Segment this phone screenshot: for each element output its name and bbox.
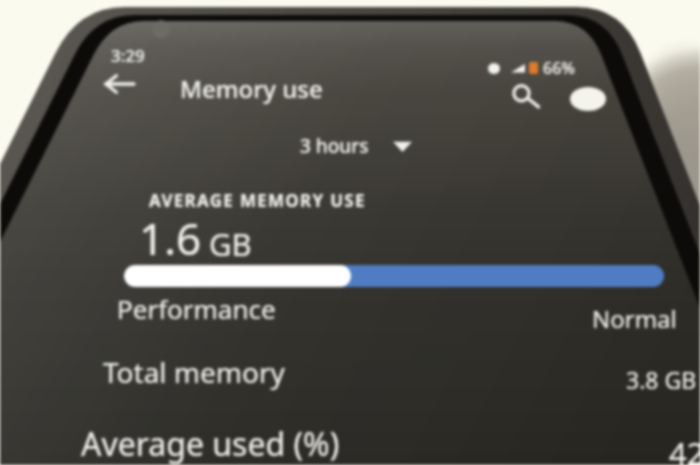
staticText: Average used (%)	[81, 422, 340, 465]
button[interactable]: Average used (%)	[81, 422, 700, 465]
button[interactable]: Search	[503, 74, 547, 118]
staticText: Total memory	[103, 353, 285, 391]
button[interactable]: Back	[97, 62, 141, 106]
button[interactable]: Account	[566, 77, 610, 121]
staticText: Memory use	[180, 72, 323, 105]
staticText: Performance	[117, 291, 276, 326]
staticText: 3 hours	[300, 133, 369, 159]
button[interactable]: Total memory	[103, 350, 697, 394]
staticText: 3.8 GB	[626, 364, 697, 394]
staticText: 1.6	[139, 208, 202, 268]
staticText: AVERAGE MEMORY USE	[149, 189, 366, 212]
button[interactable]: 3 hours	[288, 128, 424, 164]
staticText: 66%	[543, 57, 575, 79]
staticText: 42%	[669, 432, 700, 465]
staticText: GB	[209, 223, 252, 265]
staticText: Normal	[592, 302, 677, 335]
staticText: 3:29	[111, 44, 145, 67]
